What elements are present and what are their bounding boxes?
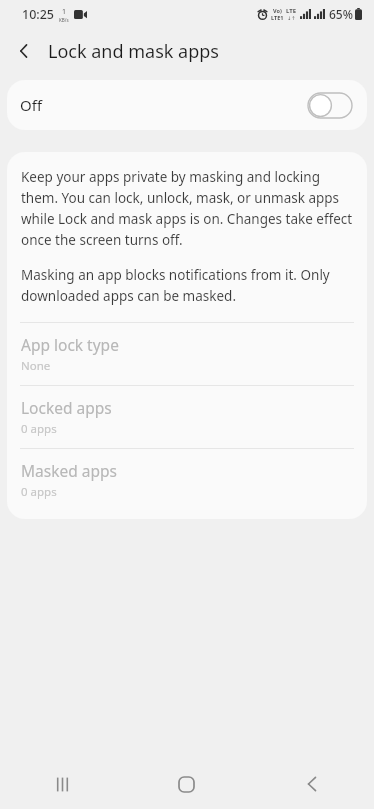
button[interactable]: Masked apps	[7, 449, 367, 511]
staticText: KB/s	[59, 17, 69, 23]
staticText: 65%	[329, 6, 353, 22]
staticText: App lock type	[21, 334, 119, 355]
button[interactable]: Navigate up	[8, 35, 40, 67]
staticText: 0 apps	[21, 421, 57, 437]
staticText: None	[21, 358, 51, 374]
staticText: 10:25	[22, 6, 55, 23]
button[interactable]: Locked apps	[7, 386, 367, 448]
staticText: Keep your apps private by masking and lo…	[21, 168, 353, 249]
staticText: LTE	[286, 7, 297, 15]
staticText: Off	[20, 95, 43, 115]
button[interactable]: Back	[249, 759, 374, 809]
button[interactable]: App lock type	[7, 323, 367, 385]
staticText: Lock and mask apps	[48, 39, 219, 64]
staticText: Vo)	[273, 7, 282, 14]
staticText: LTE1	[271, 14, 284, 21]
staticText: 0 apps	[21, 484, 57, 500]
staticText: ↓↑	[287, 15, 296, 21]
button[interactable]: Off	[7, 80, 367, 130]
staticText: Locked apps	[21, 397, 112, 418]
staticText: Masking an app blocks notifications from…	[21, 266, 353, 305]
button[interactable]: Home	[124, 759, 249, 809]
button[interactable]: Recent apps	[0, 759, 124, 809]
staticText: 1	[62, 7, 67, 17]
staticText: Masked apps	[21, 460, 117, 481]
button[interactable]: Lock and mask apps toggle, off	[308, 93, 352, 118]
